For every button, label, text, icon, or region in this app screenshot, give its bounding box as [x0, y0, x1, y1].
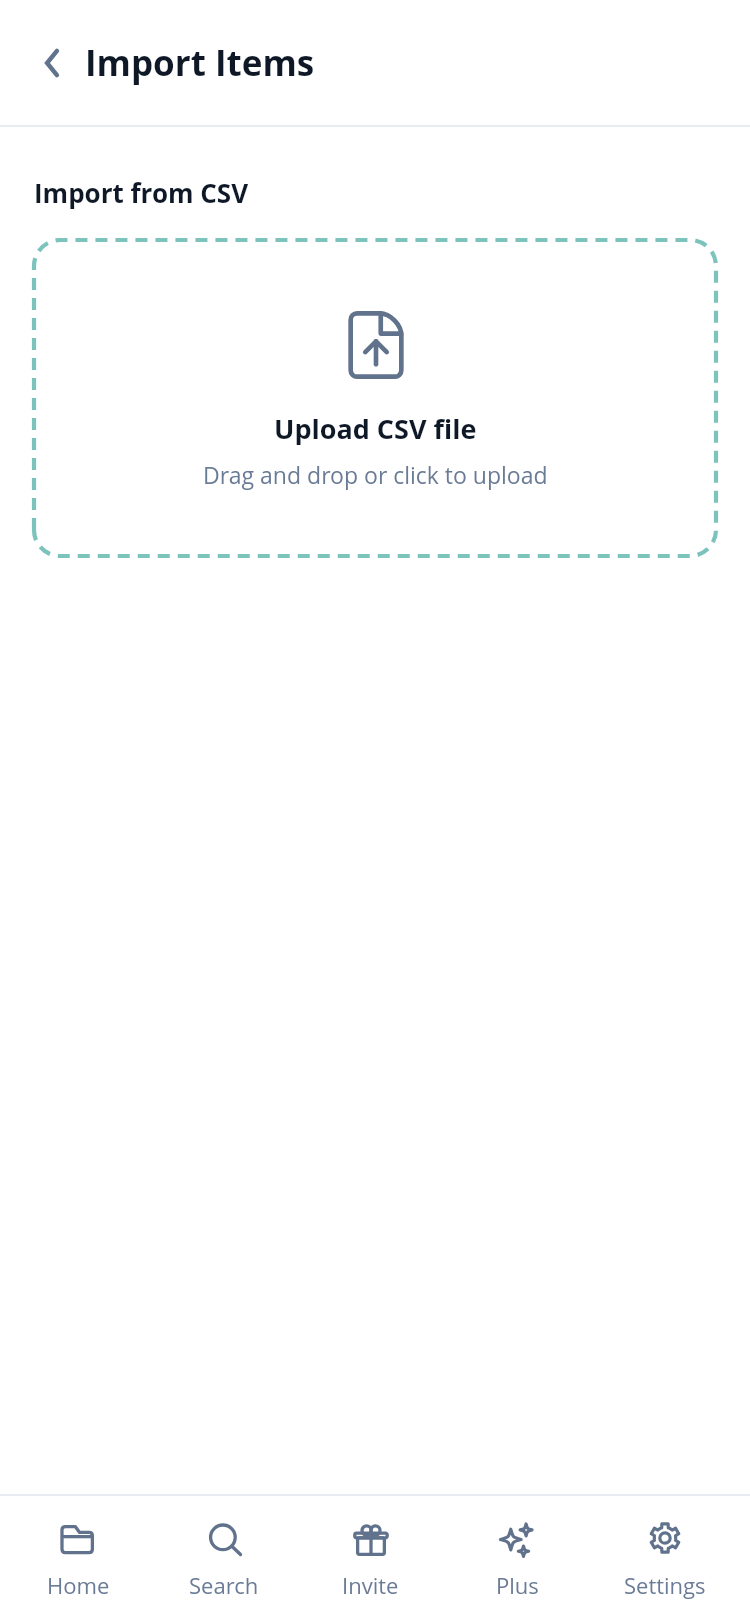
staticText: Upload CSV file [274, 410, 477, 447]
button[interactable]: Invite [297, 1496, 444, 1619]
staticText: Plus [496, 1570, 539, 1600]
button[interactable]: Home [5, 1496, 151, 1619]
button[interactable]: Settings [591, 1496, 738, 1619]
staticText: Search [189, 1570, 259, 1600]
staticText: Drag and drop or click to upload [203, 459, 548, 490]
staticText: Home [47, 1570, 110, 1600]
button[interactable]: Upload CSV file [32, 238, 718, 558]
staticText: Import from CSV [34, 175, 249, 210]
staticText: Import Items [85, 39, 315, 87]
staticText: Settings [624, 1570, 706, 1600]
button[interactable]: Search [151, 1496, 297, 1619]
staticText: Invite [342, 1570, 399, 1600]
button[interactable]: Back [28, 39, 76, 87]
button[interactable]: Plus [444, 1496, 591, 1619]
